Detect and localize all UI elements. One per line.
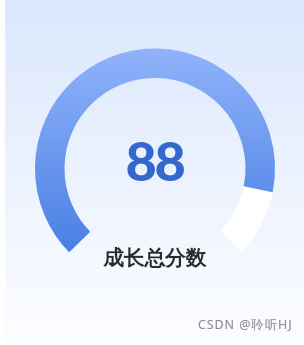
- staticText: 88: [125, 128, 184, 193]
- staticText: CSDN @聆听HJ: [198, 316, 293, 333]
- button[interactable]: Growth score 88, open details: [0, 0, 304, 345]
- staticText: 成长总分数: [103, 245, 206, 271]
